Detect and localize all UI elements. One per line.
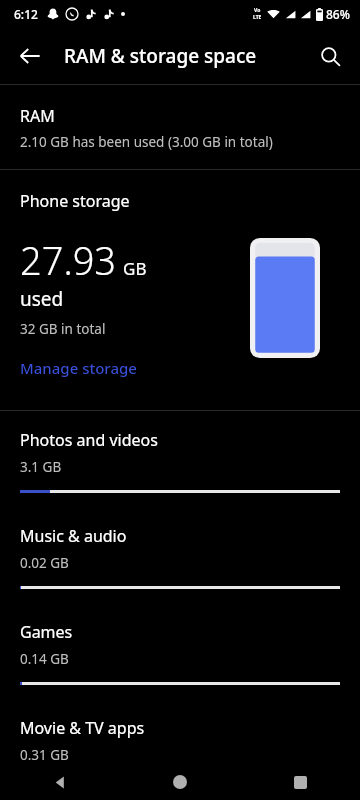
staticText: 32 GB in total — [20, 320, 106, 338]
staticText: Music & audio — [20, 525, 127, 547]
staticText: 2.10 GB has been used (3.00 GB in total) — [20, 133, 273, 151]
button[interactable]: Back — [8, 34, 52, 78]
staticText: 6:12 — [14, 6, 38, 22]
staticText: 27.93 — [20, 234, 117, 286]
button[interactable]: Home — [120, 764, 240, 800]
button[interactable]: Recents — [240, 764, 360, 800]
staticText: used — [20, 286, 64, 312]
button[interactable]: Back — [0, 764, 120, 800]
staticText: Vo — [254, 7, 261, 14]
staticText: Manage storage — [20, 358, 137, 378]
button[interactable]: RAM — [0, 85, 360, 169]
button[interactable]: Movie & TV apps — [0, 699, 360, 764]
staticText: Phone storage — [20, 190, 130, 212]
staticText: 0.14 GB — [20, 650, 69, 668]
staticText: 3.1 GB — [20, 458, 62, 476]
button[interactable]: Music & audio — [0, 507, 360, 603]
button[interactable]: Search — [308, 34, 352, 78]
button[interactable]: Games — [0, 603, 360, 699]
staticText: GB — [123, 257, 147, 280]
button[interactable]: Photos and videos — [0, 411, 360, 507]
button[interactable]: Manage storage — [20, 358, 137, 378]
staticText: Movie & TV apps — [20, 717, 145, 739]
staticText: Photos and videos — [20, 429, 158, 451]
staticText: LTE — [253, 14, 262, 21]
staticText: 0.31 GB — [20, 746, 69, 764]
staticText: 0.02 GB — [20, 554, 69, 572]
staticText: RAM & storage space — [64, 43, 257, 69]
staticText: 86% — [326, 6, 350, 22]
staticText: Games — [20, 621, 73, 643]
staticText: RAM — [20, 105, 55, 127]
